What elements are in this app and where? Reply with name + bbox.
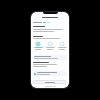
button[interactable]: Page title: [31, 15, 69, 20]
button[interactable]: [33, 71, 67, 76]
button[interactable]: [33, 55, 67, 60]
button[interactable]: Option one: [33, 41, 43, 51]
button[interactable]: Option two: [45, 41, 55, 51]
button[interactable]: Tag: [43, 22, 46, 23]
button[interactable]: Continue: [33, 80, 67, 84]
button[interactable]: Option three: [57, 41, 67, 51]
